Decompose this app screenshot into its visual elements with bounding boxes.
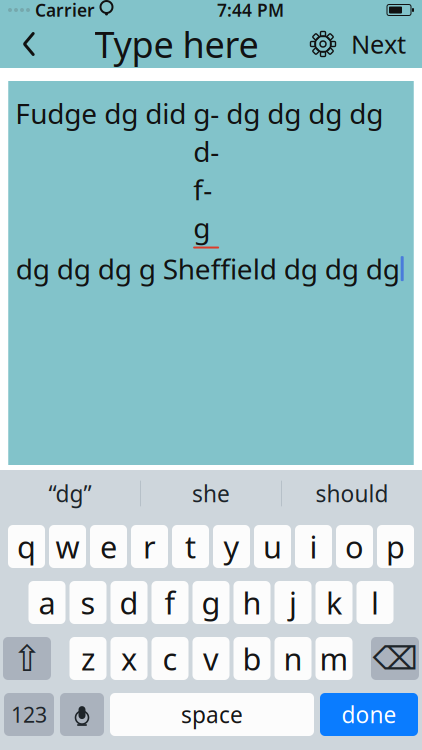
staticText: q xyxy=(17,526,36,567)
staticText: w xyxy=(55,526,79,567)
button[interactable]: w xyxy=(49,525,86,568)
button[interactable]: o xyxy=(336,525,373,568)
staticText: s xyxy=(80,582,95,623)
button[interactable]: n xyxy=(274,637,311,680)
button[interactable]: Settings xyxy=(303,21,343,67)
button[interactable]: 123 xyxy=(4,693,54,736)
staticText: n xyxy=(283,638,302,679)
button[interactable]: z xyxy=(69,637,106,680)
staticText: Carrier xyxy=(35,0,95,21)
button[interactable]: y xyxy=(213,525,250,568)
staticText: p xyxy=(386,526,405,567)
staticText: y xyxy=(223,526,239,567)
staticText: gdfg xyxy=(193,94,219,246)
button[interactable]: x xyxy=(110,637,147,680)
staticText: dg dg dg dg xyxy=(219,94,383,132)
staticText: done xyxy=(341,699,396,729)
button[interactable]: Next xyxy=(343,21,414,67)
staticText: x xyxy=(121,638,137,679)
staticText: ⇧ xyxy=(12,638,42,679)
staticText: h xyxy=(242,582,261,623)
staticText: j xyxy=(289,582,297,623)
button[interactable]: l xyxy=(356,581,393,624)
staticText: space xyxy=(181,699,243,729)
button[interactable]: i xyxy=(295,525,332,568)
button[interactable]: m xyxy=(315,637,352,680)
button[interactable]: space xyxy=(110,693,314,736)
button[interactable]: “dg” xyxy=(0,471,140,516)
staticText: e xyxy=(100,526,117,567)
staticText: dg dg dg g Sheffield dg dg dg xyxy=(16,249,400,288)
button[interactable]: k xyxy=(315,581,352,624)
button[interactable]: done xyxy=(320,693,418,736)
staticText: c xyxy=(162,638,177,679)
staticText: Type here xyxy=(94,19,258,68)
staticText: should xyxy=(315,478,388,508)
button[interactable]: Delete xyxy=(371,637,419,680)
button[interactable]: h xyxy=(233,581,270,624)
staticText: k xyxy=(326,582,342,623)
staticText: d xyxy=(119,582,138,623)
button[interactable]: g xyxy=(192,581,229,624)
staticText: Next xyxy=(351,27,406,61)
button[interactable]: a xyxy=(28,581,65,624)
staticText: t xyxy=(185,526,196,567)
staticText: z xyxy=(81,638,95,679)
staticText: ⌫ xyxy=(372,640,417,677)
button[interactable]: f xyxy=(151,581,188,624)
button[interactable]: p xyxy=(377,525,414,568)
staticText: b xyxy=(242,638,261,679)
button[interactable]: she xyxy=(141,471,281,516)
staticText: l xyxy=(371,582,379,623)
button[interactable]: j xyxy=(274,581,311,624)
button[interactable]: d xyxy=(110,581,147,624)
button[interactable]: t xyxy=(172,525,209,568)
button[interactable]: c xyxy=(151,637,188,680)
staticText: i xyxy=(309,526,317,567)
staticText: she xyxy=(192,478,230,508)
staticText: v xyxy=(203,638,219,679)
staticText: 123 xyxy=(11,700,47,729)
button[interactable]: u xyxy=(254,525,291,568)
button[interactable]: should xyxy=(282,471,422,516)
button[interactable]: v xyxy=(192,637,229,680)
button[interactable]: e xyxy=(90,525,127,568)
staticText: m xyxy=(319,638,348,679)
staticText: “dg” xyxy=(48,478,91,508)
staticText: a xyxy=(38,582,55,623)
staticText: Fudge dg did xyxy=(15,94,193,132)
button[interactable]: Back xyxy=(8,21,50,67)
button[interactable]: q xyxy=(8,525,45,568)
button[interactable]: r xyxy=(131,525,168,568)
staticText: g xyxy=(201,582,220,623)
staticText: u xyxy=(263,526,282,567)
staticText: o xyxy=(345,526,364,567)
button[interactable]: s xyxy=(69,581,106,624)
staticText: r xyxy=(143,526,156,567)
button[interactable]: Shift xyxy=(3,637,51,680)
staticText: f xyxy=(164,582,175,623)
staticText: 7:44 PM xyxy=(217,0,284,21)
button[interactable]: b xyxy=(233,637,270,680)
button[interactable]: Dictate xyxy=(60,693,104,736)
